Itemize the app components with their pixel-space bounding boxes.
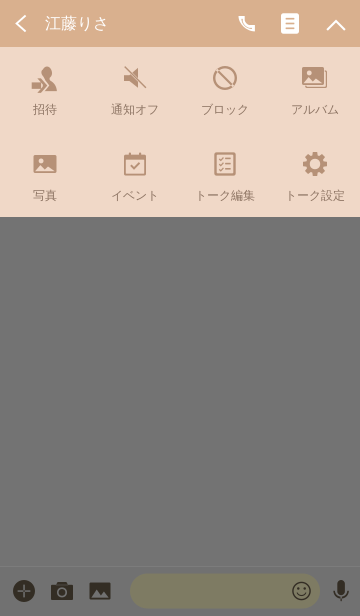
staticText: 写真 xyxy=(33,188,57,203)
button[interactable]: アルバム xyxy=(270,64,360,116)
button[interactable]: Collapse menu xyxy=(312,0,360,47)
button[interactable]: Back xyxy=(0,0,42,47)
button[interactable]: Add xyxy=(5,565,43,616)
button[interactable]: イベント xyxy=(90,150,180,202)
button[interactable]: 招待 xyxy=(0,64,90,116)
button[interactable]: Message input xyxy=(130,573,320,608)
button[interactable]: トーク設定 xyxy=(270,150,360,202)
button[interactable]: Camera xyxy=(43,565,81,616)
staticText: イベント xyxy=(111,188,159,203)
staticText: アルバム xyxy=(291,102,339,117)
button[interactable]: ブロック xyxy=(180,64,270,116)
button[interactable]: Voice message xyxy=(322,565,360,616)
staticText: 招待 xyxy=(33,102,57,117)
staticText: トーク編集 xyxy=(195,188,255,203)
button[interactable]: トーク編集 xyxy=(180,150,270,202)
button[interactable]: Menu xyxy=(268,0,312,47)
staticText: トーク設定 xyxy=(285,188,345,203)
button[interactable]: Call xyxy=(226,0,268,47)
staticText: ブロック xyxy=(201,102,249,117)
staticText: 通知オフ xyxy=(111,102,159,117)
button[interactable]: 通知オフ xyxy=(90,64,180,116)
button[interactable]: Photo library xyxy=(81,565,119,616)
button[interactable]: 写真 xyxy=(0,150,90,202)
staticText: 江藤りさ xyxy=(45,14,109,33)
